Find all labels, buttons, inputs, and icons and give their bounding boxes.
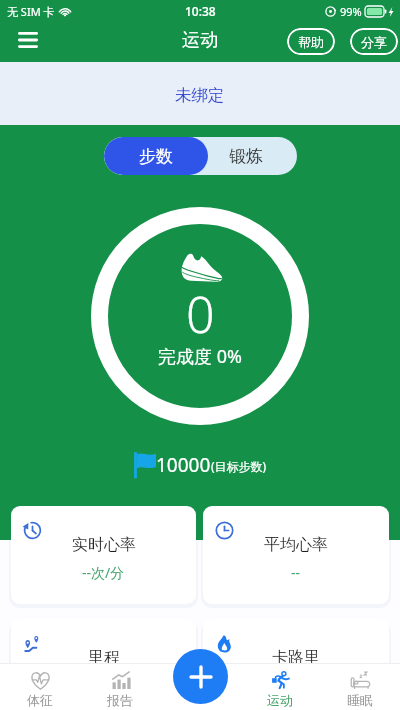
staticText: 帮助 [298, 34, 324, 50]
staticText: 无 SIM 卡 [7, 4, 55, 19]
button[interactable]: 锻炼 [208, 137, 297, 175]
staticText: 10000 [156, 452, 211, 478]
staticText: (目标步数) [211, 458, 267, 474]
staticText: 未绑定 [175, 85, 225, 106]
staticText: 里程 [88, 648, 120, 668]
staticText: 10:38 [185, 3, 216, 19]
staticText: 0 [186, 280, 215, 334]
button[interactable]: 平均心率 [203, 506, 389, 604]
staticText: -- [291, 563, 301, 582]
staticText: 分享 [361, 34, 387, 50]
button[interactable]: 报告 [80, 663, 160, 710]
button[interactable]: 实时心率 [11, 506, 196, 604]
staticText: 报告 [107, 692, 133, 708]
staticText: 睡眠 [347, 692, 373, 708]
staticText: 99% [340, 4, 362, 19]
staticText: 锻炼 [229, 146, 263, 167]
button[interactable]: 卡路里 [203, 619, 389, 710]
staticText: 卡路里 [272, 648, 320, 668]
button[interactable]: 分享 [350, 28, 398, 55]
staticText: 平均心率 [264, 535, 328, 555]
staticText: 运动 [182, 29, 218, 52]
staticText: 完成度 0% [158, 344, 242, 368]
button[interactable]: 帮助 [287, 28, 335, 55]
button[interactable]: 步数 [104, 137, 208, 175]
button[interactable]: Add [173, 649, 228, 704]
staticText: 运动 [267, 692, 293, 708]
staticText: 步数 [139, 146, 173, 167]
staticText: 体征 [27, 692, 53, 708]
button[interactable]: 里程 [11, 619, 196, 710]
staticText: 实时心率 [72, 535, 136, 555]
button[interactable]: 运动 [240, 663, 320, 710]
button[interactable]: Menu [10, 22, 46, 58]
button[interactable]: 体征 [0, 663, 80, 710]
staticText: --次/分 [82, 563, 125, 582]
button[interactable]: 睡眠 [320, 663, 400, 710]
